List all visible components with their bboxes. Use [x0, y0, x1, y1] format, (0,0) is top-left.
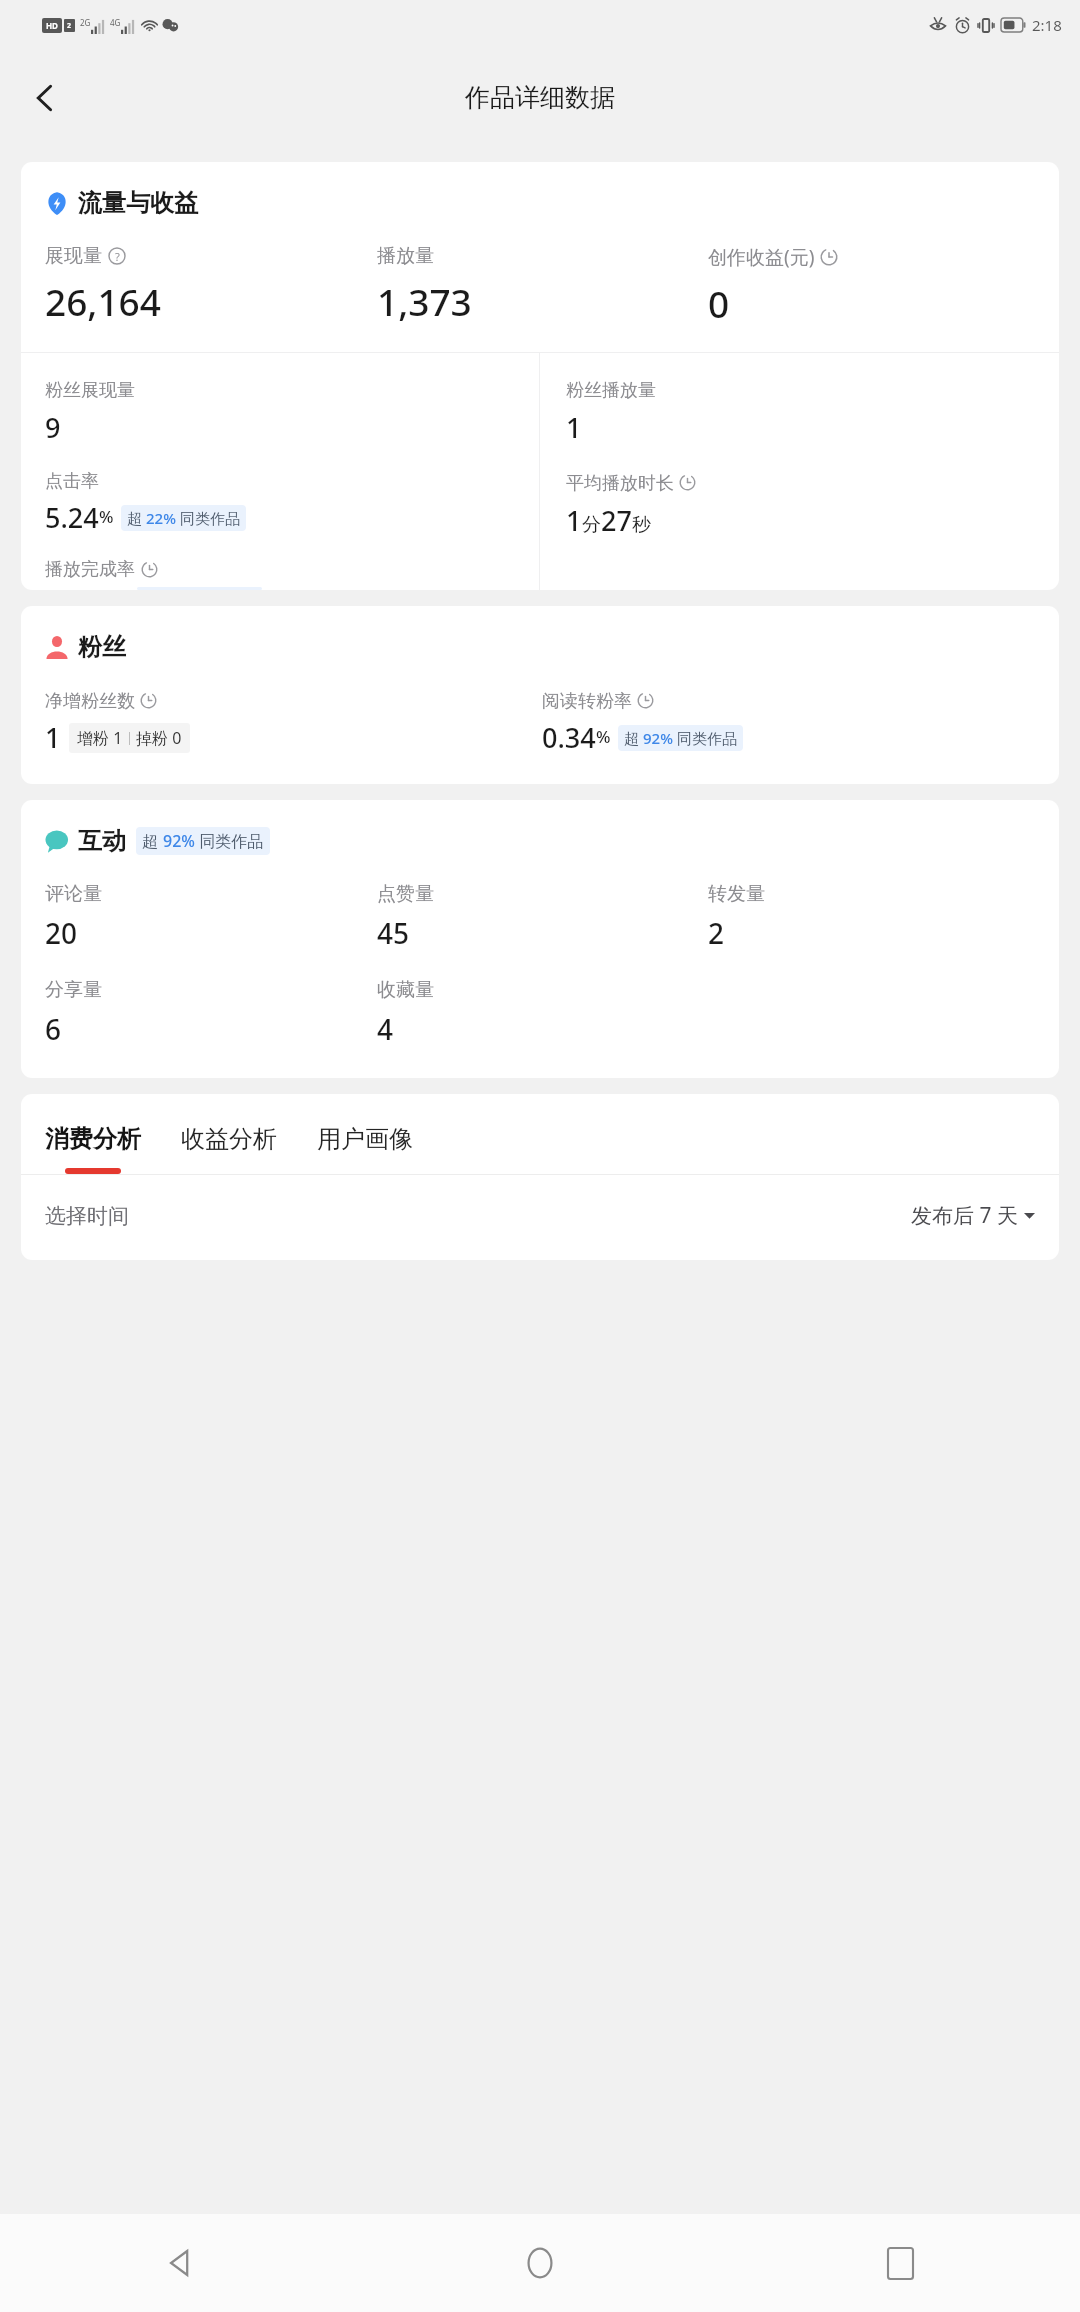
staticText: 评论量	[45, 882, 102, 906]
staticText: 4G	[110, 17, 121, 28]
staticText: 作品详细数据	[465, 82, 615, 113]
staticText: %	[99, 505, 114, 528]
staticText: 转发量	[708, 882, 765, 906]
staticText: 收藏量	[377, 978, 434, 1002]
staticText: 掉粉 0	[136, 727, 182, 749]
staticText: 92%	[643, 728, 673, 748]
staticText: 净增粉丝数	[45, 688, 140, 713]
staticText: 同类作品	[673, 728, 737, 748]
staticText: 增粉 1	[77, 727, 123, 749]
staticText: 4	[377, 1010, 394, 1048]
staticText: 45	[377, 914, 410, 952]
staticText: 22%	[146, 508, 176, 528]
staticText: 1	[566, 409, 582, 446]
staticText: ?	[115, 249, 120, 264]
staticText: 2G	[80, 17, 91, 28]
staticText: 平均播放时长	[566, 470, 679, 495]
staticText: 2:18	[1032, 15, 1062, 35]
staticText: 流量与收益	[78, 188, 198, 218]
staticText: 发布后 7 天	[911, 1201, 1018, 1230]
staticText: 创作收益(元)	[708, 244, 815, 270]
staticText: 播放完成率	[45, 558, 135, 581]
staticText: 阅读转粉率	[542, 688, 637, 713]
staticText: 互动	[78, 826, 126, 856]
button[interactable]: Back	[0, 2214, 360, 2312]
staticText: 粉丝展现量	[45, 379, 135, 402]
staticText: 收益分析	[181, 1124, 277, 1154]
staticText: 展现量	[45, 244, 102, 268]
staticText: 同类作品	[176, 508, 240, 528]
staticText: 点击率	[45, 470, 99, 493]
button[interactable]: Back	[14, 67, 76, 129]
staticText: 0.34	[542, 719, 596, 756]
button[interactable]: 消费分析	[45, 1124, 141, 1174]
staticText: 点赞量	[377, 882, 434, 906]
button[interactable]: 发布后 7 天	[911, 1201, 1035, 1230]
staticText: 分享量	[45, 978, 102, 1002]
staticText: 用户画像	[317, 1124, 413, 1154]
staticText: 播放量	[377, 244, 434, 268]
staticText: 超	[142, 830, 163, 852]
staticText: 粉丝	[78, 632, 126, 662]
staticText: %	[596, 725, 611, 748]
staticText: 消费分析	[45, 1124, 141, 1154]
staticText: 1,373	[377, 276, 472, 326]
staticText: 选择时间	[45, 1203, 129, 1229]
staticText: 0	[708, 278, 730, 328]
staticText: 粉丝播放量	[566, 379, 656, 402]
staticText: 超	[127, 508, 146, 528]
staticText: 92%	[163, 830, 195, 852]
staticText: 2	[67, 21, 72, 31]
button[interactable]: 用户画像	[317, 1124, 413, 1174]
staticText: 超	[624, 728, 643, 748]
button[interactable]: Home	[360, 2214, 720, 2312]
staticText: HD	[46, 20, 58, 31]
button[interactable]: Recents	[720, 2214, 1080, 2312]
button[interactable]: 收益分析	[181, 1124, 277, 1174]
staticText: 20	[45, 914, 78, 952]
staticText: 6	[45, 1010, 62, 1048]
staticText: 27	[601, 502, 632, 539]
staticText: 5.24	[45, 499, 99, 536]
staticText: 1	[566, 502, 582, 539]
staticText: 分	[582, 513, 601, 537]
staticText: 9	[45, 409, 61, 446]
staticText: 26,164	[45, 276, 161, 326]
staticText: 2	[708, 914, 725, 952]
staticText: 秒	[632, 513, 651, 537]
staticText: 1	[45, 719, 61, 756]
staticText: 同类作品	[195, 830, 264, 852]
